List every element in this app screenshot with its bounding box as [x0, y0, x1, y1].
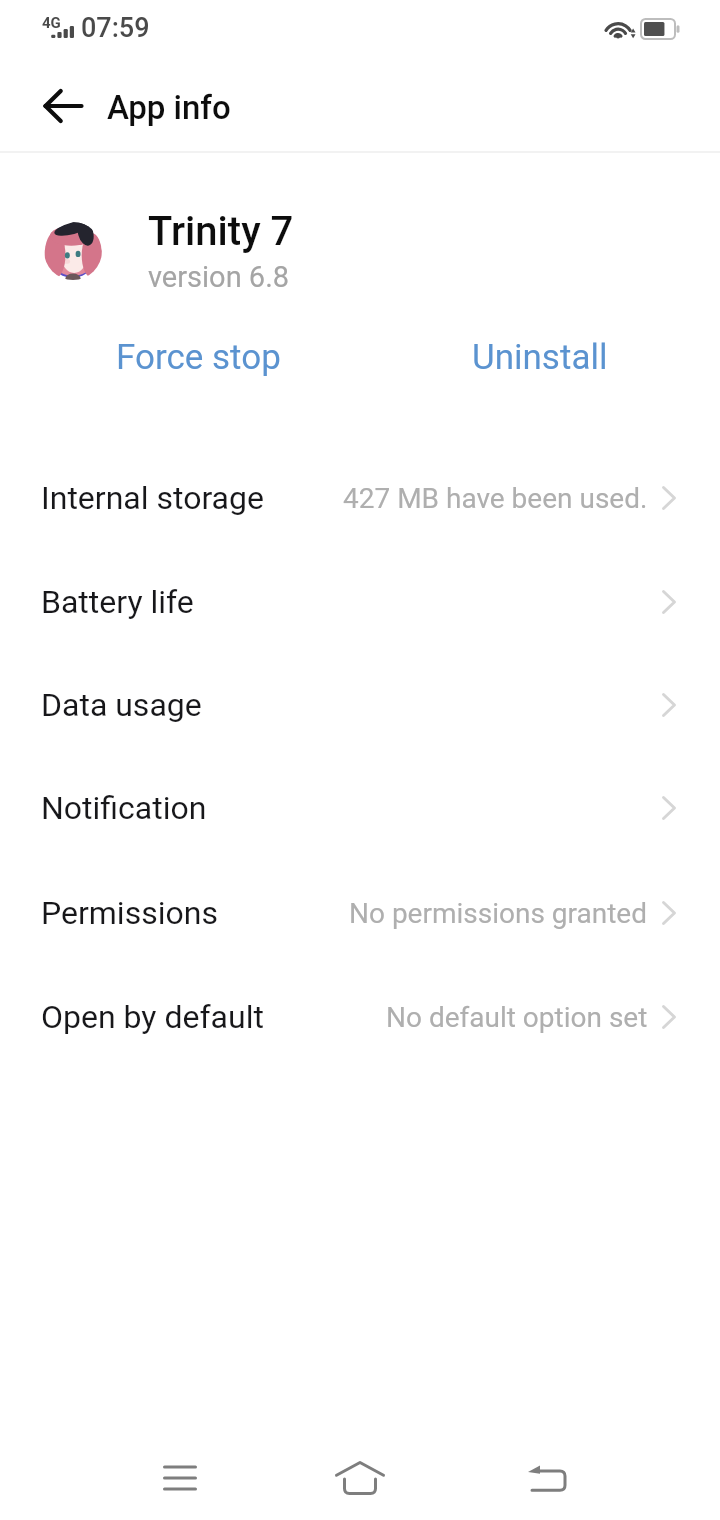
button[interactable]: Recent apps — [140, 1438, 220, 1518]
button[interactable]: Force stop — [80, 321, 316, 393]
staticText: Battery life — [41, 583, 194, 621]
button[interactable]: Back — [26, 72, 100, 140]
staticText: No default option set — [386, 1001, 648, 1034]
staticText: 427 MB have been used. — [343, 482, 648, 515]
staticText: Trinity 7 — [148, 208, 294, 255]
staticText: 4G — [42, 14, 61, 32]
button[interactable]: Battery life — [0, 550, 720, 654]
staticText: 07:59 — [81, 12, 150, 44]
button[interactable]: Data usage — [0, 653, 720, 757]
button[interactable]: Open by default — [0, 965, 720, 1069]
staticText: Force stop — [116, 337, 281, 378]
staticText: Open by default — [41, 998, 264, 1036]
staticText: App info — [107, 88, 231, 127]
staticText: Permissions — [41, 894, 218, 932]
staticText: Data usage — [41, 686, 202, 724]
button[interactable]: Home — [320, 1438, 400, 1518]
button[interactable]: Permissions — [0, 861, 720, 965]
staticText: Internal storage — [41, 479, 264, 517]
staticText: No permissions granted — [349, 897, 648, 930]
staticText: version 6.8 — [148, 260, 290, 294]
button[interactable]: Internal storage — [0, 446, 720, 550]
button[interactable]: Notification — [0, 756, 720, 860]
button[interactable]: Uninstall — [422, 321, 658, 393]
staticText: Uninstall — [472, 337, 608, 378]
button[interactable]: Back — [508, 1438, 588, 1518]
staticText: Notification — [41, 789, 207, 827]
